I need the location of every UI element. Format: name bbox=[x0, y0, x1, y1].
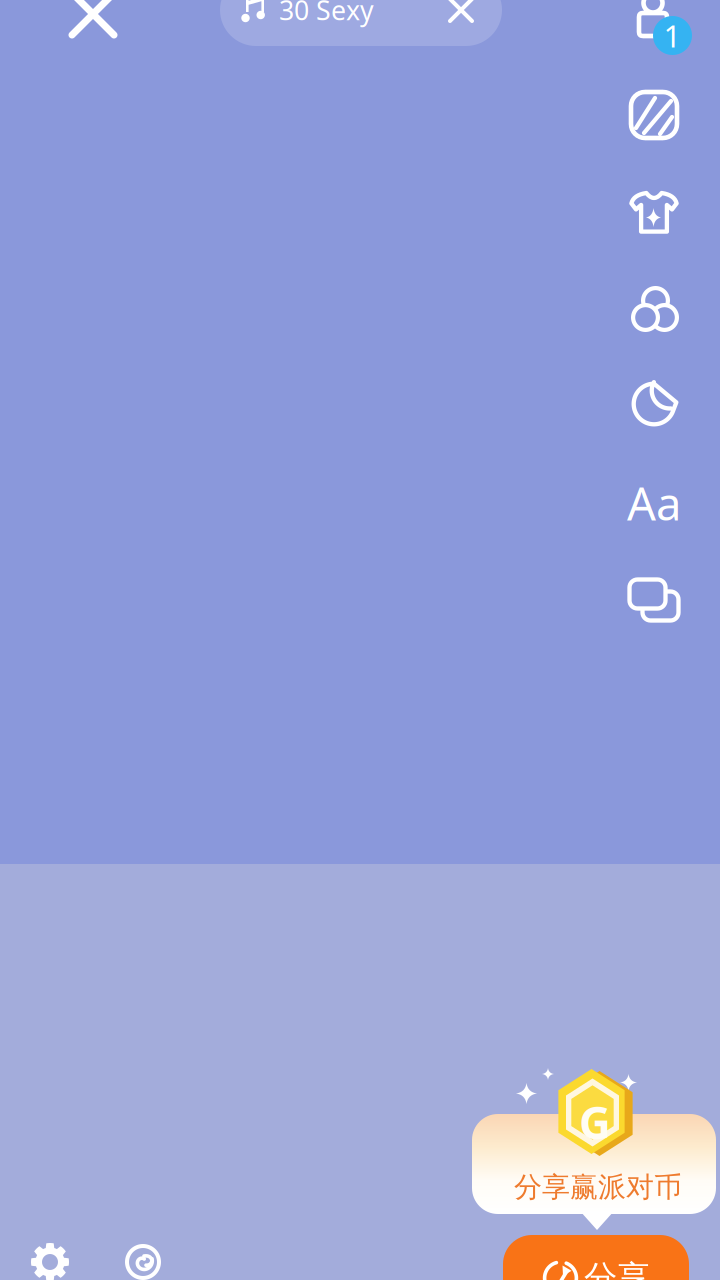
staticText: G bbox=[579, 1093, 611, 1151]
staticText: 30 Sexy bbox=[279, 0, 374, 28]
button[interactable]: Layers bbox=[614, 575, 694, 625]
button[interactable]: Participants bbox=[630, 0, 714, 63]
button[interactable]: Effects bbox=[108, 1227, 178, 1280]
button[interactable]: 30 Sexy bbox=[220, 0, 502, 46]
staticText: 分享 bbox=[584, 1257, 650, 1280]
button[interactable]: Stickers bbox=[614, 379, 694, 429]
button[interactable]: Text bbox=[614, 478, 694, 528]
staticText: Aa bbox=[627, 473, 681, 533]
button[interactable]: Close bbox=[58, 0, 128, 49]
button[interactable]: Background bbox=[614, 90, 694, 140]
button[interactable]: Settings bbox=[15, 1227, 85, 1280]
staticText: 分享赢派对币 bbox=[514, 1170, 682, 1204]
staticText: 1 bbox=[663, 15, 681, 56]
button[interactable]: Outfit bbox=[614, 187, 694, 237]
button[interactable]: 分享 bbox=[503, 1235, 689, 1280]
button[interactable]: Filters bbox=[614, 284, 694, 334]
